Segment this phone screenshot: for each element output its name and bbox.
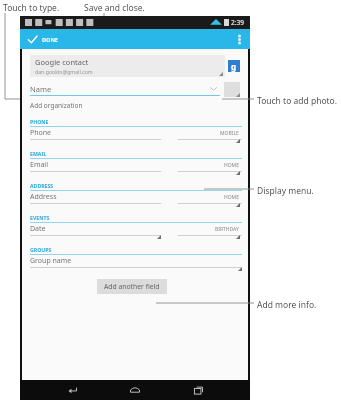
staticText: g bbox=[231, 61, 237, 72]
staticText: MOBILE bbox=[220, 130, 239, 137]
button[interactable]: Phone bbox=[30, 127, 242, 147]
button[interactable]: Back bbox=[61, 380, 83, 400]
staticText: Phone bbox=[30, 128, 52, 138]
staticText: 2:39 bbox=[231, 18, 244, 27]
staticText: Name bbox=[30, 84, 52, 94]
button[interactable]: More options bbox=[232, 32, 246, 46]
staticText: dan.gookin@gmail.com bbox=[35, 68, 93, 75]
button[interactable]: Recent apps bbox=[187, 380, 209, 400]
staticText: HOME bbox=[224, 194, 239, 201]
button[interactable]: Add organization bbox=[30, 101, 83, 110]
staticText: Add organization bbox=[30, 101, 83, 110]
button[interactable]: Email bbox=[30, 159, 242, 179]
button[interactable]: Address bbox=[30, 191, 242, 211]
staticText: Address bbox=[30, 192, 57, 202]
button[interactable]: Group name bbox=[30, 255, 242, 271]
staticText: GROUPS bbox=[30, 246, 52, 253]
staticText: Email bbox=[30, 160, 48, 170]
staticText: Add another field bbox=[104, 282, 160, 291]
staticText: Add more info. bbox=[257, 299, 317, 311]
staticText: EMAIL bbox=[30, 150, 47, 157]
staticText: Google contact bbox=[35, 57, 89, 67]
button[interactable]: Add photo bbox=[224, 82, 240, 97]
staticText: HOME bbox=[224, 162, 239, 169]
staticText: EVENTS bbox=[30, 214, 50, 221]
staticText: PHONE bbox=[30, 118, 49, 125]
button[interactable]: Home bbox=[124, 380, 146, 400]
staticText: BIRTHDAY bbox=[215, 226, 239, 233]
button[interactable]: Name bbox=[30, 82, 220, 95]
staticText: Touch to type. bbox=[3, 2, 60, 14]
button[interactable]: Google contact bbox=[30, 55, 242, 77]
button[interactable]: Add another field bbox=[97, 279, 167, 294]
staticText: ADDRESS bbox=[30, 182, 54, 189]
button[interactable]: DONE bbox=[25, 32, 60, 47]
staticText: Save and close. bbox=[84, 2, 145, 14]
staticText: Touch to add photo. bbox=[257, 95, 338, 107]
staticText: Group name bbox=[30, 256, 72, 266]
staticText: Date bbox=[30, 224, 46, 234]
staticText: Display menu. bbox=[257, 185, 314, 197]
staticText: DONE bbox=[42, 36, 58, 43]
button[interactable]: Date bbox=[30, 223, 242, 243]
